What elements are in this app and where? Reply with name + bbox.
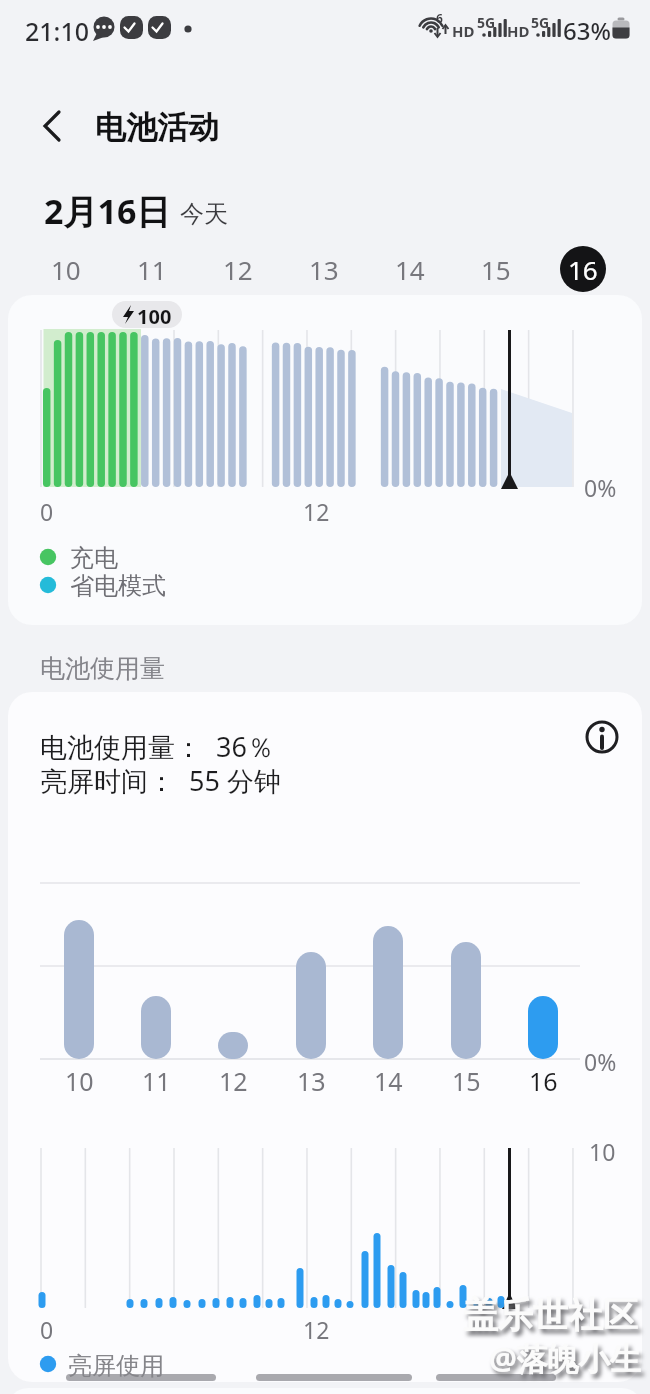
staticText: 12 [219, 1064, 248, 1098]
staticText: 盖乐世社区 [463, 1293, 638, 1337]
staticText: 电池使用量 [40, 653, 165, 684]
staticText: 亮屏使用 [68, 1351, 164, 1381]
button[interactable]: 13 [294, 244, 354, 294]
staticText: 13 [309, 252, 339, 287]
staticText: 63% [563, 14, 611, 47]
button[interactable]: 11 [122, 244, 182, 294]
button[interactable]: 10 [36, 244, 96, 294]
staticText: 0% [584, 1046, 617, 1077]
staticText: 省电模式 [70, 571, 166, 601]
button[interactable]: 12 [208, 244, 268, 294]
button[interactable]: 15 [466, 244, 526, 294]
staticText: HD [452, 21, 475, 41]
staticText: 10 [51, 252, 81, 287]
staticText: 6 [436, 10, 443, 26]
button[interactable]: 14 [380, 244, 440, 294]
staticText: 16 [529, 1064, 558, 1098]
staticText: 14 [374, 1064, 403, 1098]
button[interactable] [430, 1366, 562, 1390]
staticText: 2月16日 [44, 188, 171, 234]
staticText: 15 [452, 1064, 481, 1098]
staticText: 100 [137, 303, 172, 330]
staticText: 15 [481, 252, 511, 287]
staticText: 11 [137, 252, 167, 287]
staticText: 12 [223, 252, 253, 287]
button[interactable] [580, 715, 625, 760]
staticText: 0 [40, 1314, 54, 1345]
button[interactable]: 16 [553, 239, 613, 299]
staticText: 12 [303, 496, 330, 527]
staticText: 充电 [70, 543, 118, 573]
staticText: 13 [297, 1064, 326, 1098]
staticText: HD [507, 21, 530, 41]
staticText: @落魄小生 [489, 1337, 641, 1379]
staticText: 16 [568, 252, 598, 287]
button[interactable] [30, 100, 80, 150]
staticText: 11 [142, 1064, 171, 1098]
staticText: 电池使用量： 36％ [40, 728, 274, 765]
staticText: 0% [584, 472, 617, 503]
staticText: 亮屏时间： 55 分钟 [40, 762, 281, 799]
staticText: 今天 [180, 199, 228, 229]
staticText: 0 [40, 496, 54, 527]
button[interactable] [60, 1366, 222, 1390]
button[interactable] [250, 1366, 418, 1390]
staticText: 21:10 [25, 14, 90, 48]
staticText: 电池活动 [95, 108, 219, 147]
staticText: 10 [589, 1136, 616, 1167]
staticText: 12 [303, 1314, 330, 1345]
staticText: 14 [395, 252, 425, 287]
staticText: 5G [477, 13, 496, 32]
staticText: 5G [531, 13, 550, 32]
staticText: 10 [65, 1064, 94, 1098]
